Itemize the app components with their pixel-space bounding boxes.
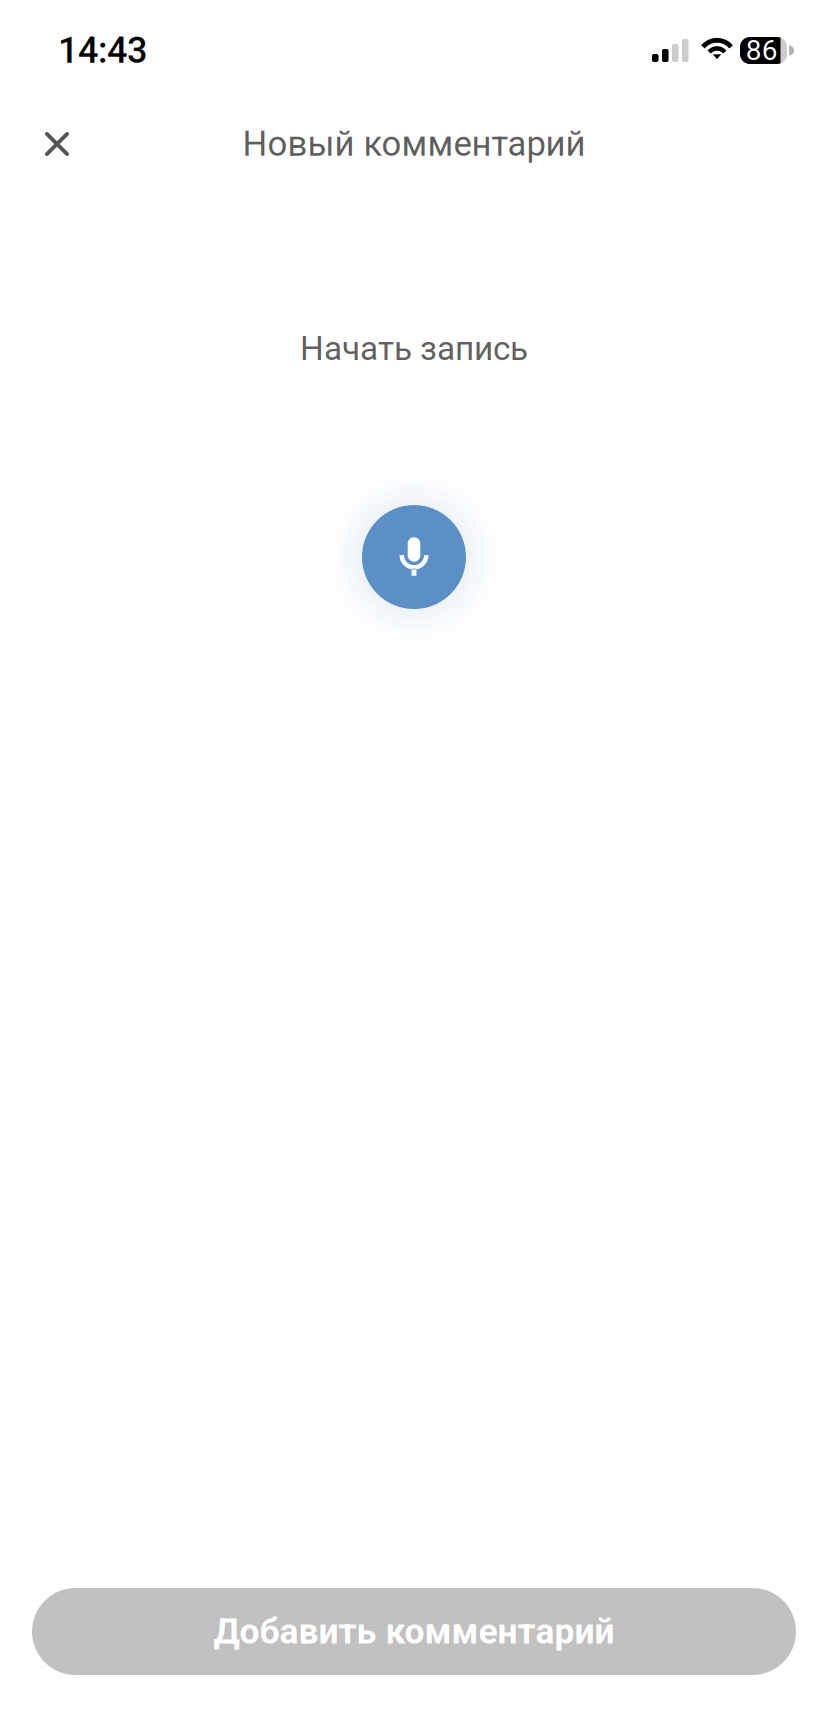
staticText: Начать запись [300,329,528,368]
staticText: Новый комментарий [242,124,585,164]
staticText: 86 [746,34,778,67]
staticText: 14:43 [58,29,147,72]
button[interactable]: Добавить комментарий [32,1588,796,1675]
button[interactable]: Начать запись [362,505,466,609]
staticText: Добавить комментарий [213,1611,614,1652]
button[interactable]: Закрыть [17,104,97,184]
